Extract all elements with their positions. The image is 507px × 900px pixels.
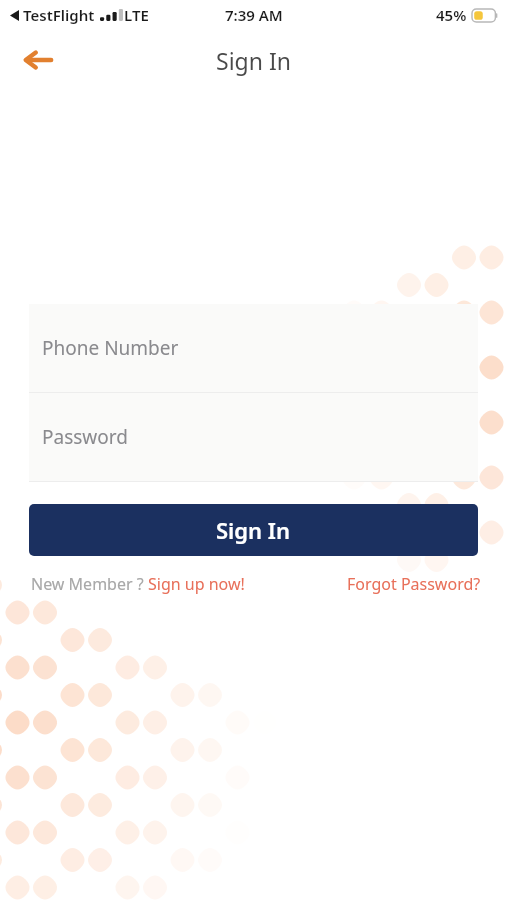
staticText: New Member ? — [31, 573, 148, 595]
staticText: Sign up now! — [148, 573, 245, 595]
staticText: TestFlight — [23, 5, 95, 25]
staticText: Phone Number — [42, 335, 179, 361]
button[interactable]: Password — [29, 393, 478, 481]
button[interactable]: Phone Number — [29, 304, 478, 392]
staticText: 45% — [436, 5, 467, 25]
button[interactable]: Back — [14, 36, 62, 84]
staticText: 7:39 AM — [225, 5, 283, 25]
button[interactable]: New Member ? — [31, 573, 245, 595]
button[interactable]: Forgot Password? — [347, 573, 481, 595]
staticText: Sign In — [216, 515, 291, 545]
staticText: LTE — [124, 5, 149, 25]
staticText: Forgot Password? — [347, 573, 481, 595]
button[interactable]: Sign In — [29, 504, 478, 556]
staticText: Password — [42, 424, 128, 450]
staticText: Sign In — [216, 45, 291, 76]
